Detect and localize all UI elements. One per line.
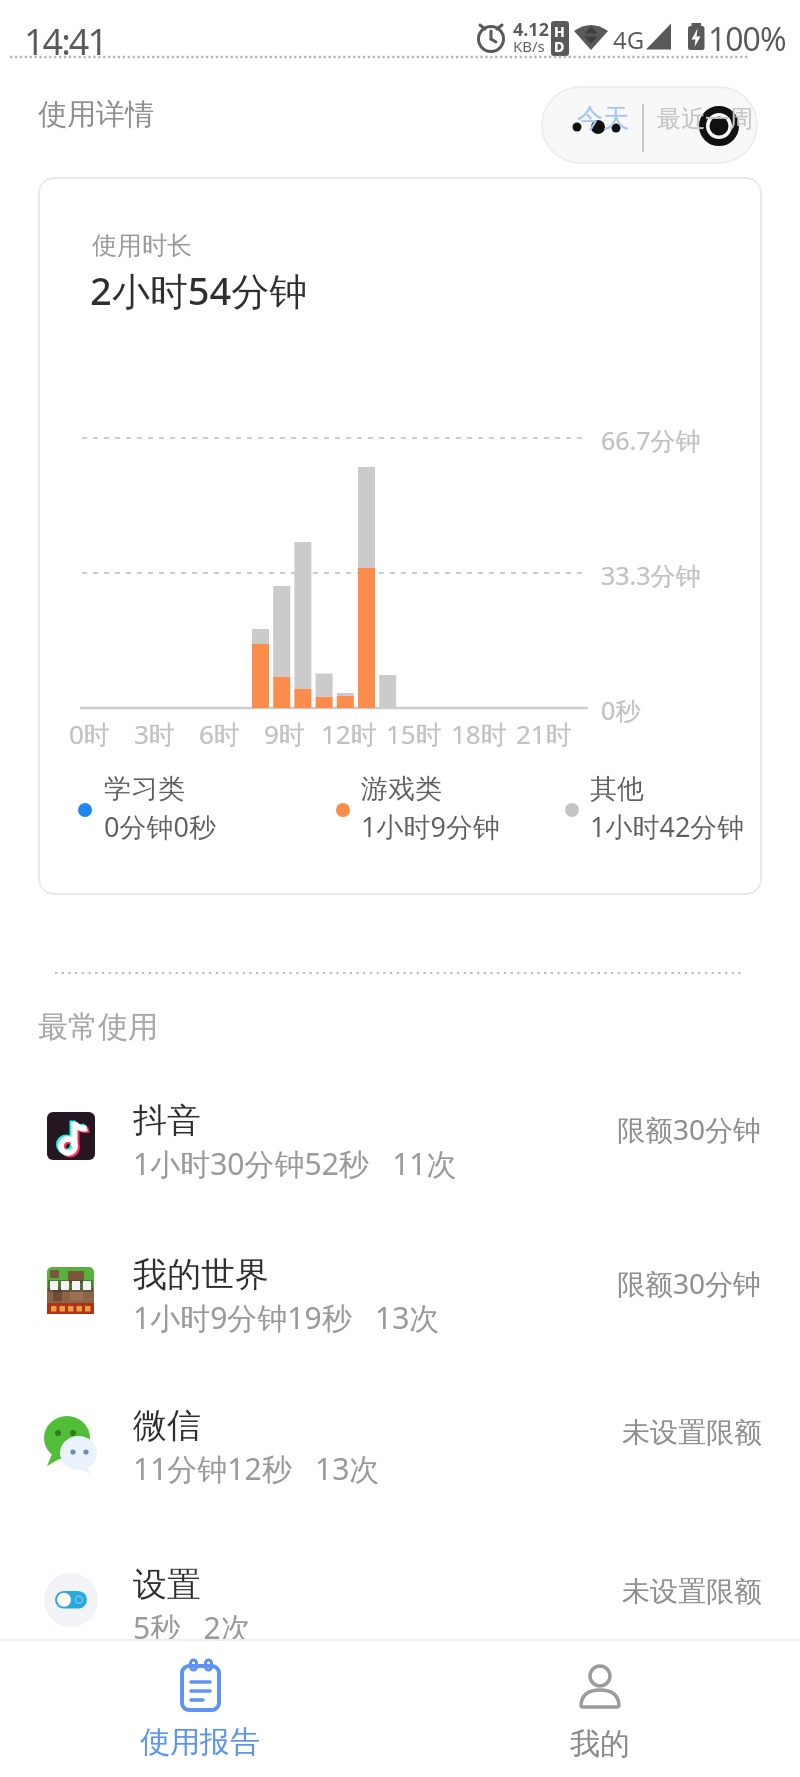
staticText: 未设置限额 bbox=[622, 1415, 762, 1450]
staticText: 今天 bbox=[577, 102, 629, 135]
staticText: 微信 bbox=[133, 1404, 201, 1447]
staticText: 限额30分钟 bbox=[617, 1110, 762, 1148]
staticText: 1小时9分钟19秒 13次 bbox=[133, 1297, 440, 1338]
staticText: 66.7分钟 bbox=[601, 423, 701, 457]
staticText: 4G bbox=[613, 23, 645, 56]
staticText: 4.12 bbox=[513, 17, 549, 42]
staticText: KB/s bbox=[513, 36, 545, 56]
button[interactable] bbox=[80, 1639, 320, 1777]
staticText: 18时 bbox=[451, 716, 507, 752]
staticText: D bbox=[554, 37, 565, 56]
staticText: 使用详情 bbox=[38, 96, 154, 133]
staticText: 游戏类 bbox=[361, 772, 442, 806]
staticText: 9时 bbox=[264, 716, 305, 752]
staticText: 我的 bbox=[570, 1725, 630, 1763]
staticText: 限额30分钟 bbox=[617, 1264, 762, 1302]
button[interactable] bbox=[0, 1525, 800, 1675]
staticText: 学习类 bbox=[104, 772, 185, 806]
staticText: 1小时9分钟 bbox=[361, 808, 500, 845]
staticText: 0分钟0秒 bbox=[104, 808, 216, 845]
staticText: 2小时54分钟 bbox=[90, 264, 308, 316]
staticText: 5秒 2次 bbox=[133, 1607, 251, 1648]
button[interactable] bbox=[480, 1639, 720, 1777]
staticText: H bbox=[554, 22, 565, 41]
button[interactable] bbox=[0, 1061, 800, 1211]
staticText: 6时 bbox=[199, 716, 240, 752]
staticText: 14:41 bbox=[24, 17, 107, 66]
staticText: 0秒 bbox=[601, 693, 641, 727]
staticText: 12时 bbox=[321, 716, 377, 752]
staticText: 0时 bbox=[69, 716, 110, 752]
staticText: 3时 bbox=[134, 716, 175, 752]
staticText: 1小时42分钟 bbox=[590, 808, 745, 845]
button[interactable] bbox=[0, 1215, 800, 1365]
staticText: 33.3分钟 bbox=[601, 558, 701, 592]
staticText: 1小时30分钟52秒 11次 bbox=[133, 1143, 457, 1184]
staticText: 最常使用 bbox=[38, 1008, 158, 1046]
staticText: 100% bbox=[708, 17, 786, 61]
staticText: 使用报告 bbox=[140, 1723, 260, 1761]
staticText: 最近一周 bbox=[657, 104, 753, 134]
staticText: 未设置限额 bbox=[622, 1574, 762, 1609]
staticText: 使用时长 bbox=[92, 230, 192, 261]
staticText: 设置 bbox=[133, 1563, 201, 1606]
staticText: 抖音 bbox=[133, 1099, 201, 1142]
staticText: 11分钟12秒 13次 bbox=[133, 1448, 380, 1489]
button[interactable] bbox=[0, 1366, 800, 1516]
button[interactable] bbox=[541, 86, 758, 164]
staticText: 21时 bbox=[516, 716, 572, 752]
staticText: 15时 bbox=[386, 716, 442, 752]
staticText: 我的世界 bbox=[133, 1253, 269, 1296]
staticText: 其他 bbox=[590, 772, 644, 806]
